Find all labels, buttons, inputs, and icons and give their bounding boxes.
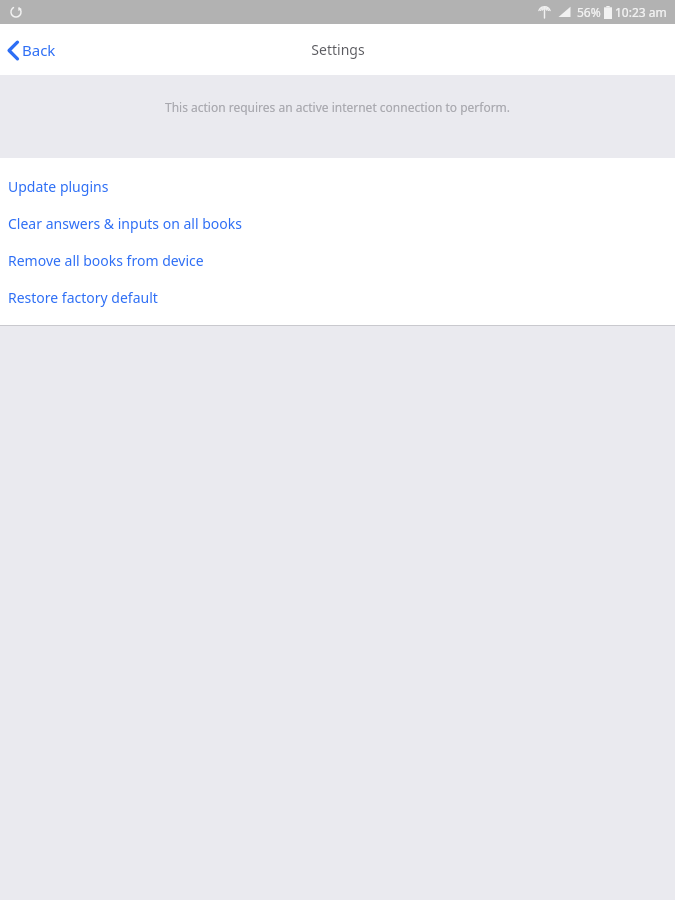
staticText: Settings [311,40,365,59]
button[interactable]: Clear answers & inputs on all books [0,205,675,242]
staticText: Remove all books from device [8,251,204,270]
staticText: This action requires an active internet … [0,99,675,115]
staticText: 10:23 am [615,4,667,20]
staticText: Restore factory default [8,288,158,307]
staticText: Back [22,40,56,60]
button[interactable]: Restore factory default [0,279,675,316]
button[interactable]: Remove all books from device [0,242,675,279]
staticText: Update plugins [8,177,109,196]
button[interactable]: Update plugins [0,168,675,205]
button[interactable]: Back [0,32,66,68]
staticText: 56% [577,4,601,20]
staticText: Clear answers & inputs on all books [8,214,242,233]
